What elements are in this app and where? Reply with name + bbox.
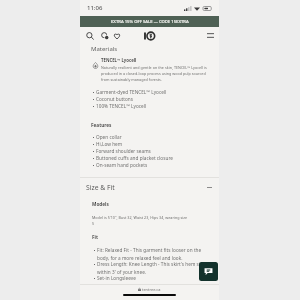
button[interactable]: EXTRA 15% OFF SALE — CODE 15EXTRA	[80, 16, 219, 27]
staticText: Materials	[91, 45, 118, 53]
staticText: EXTRA 15% OFF SALE — CODE 15EXTRA	[111, 19, 189, 25]
staticText: On-seam hand pockets	[96, 162, 148, 168]
staticText: Coconut buttons	[96, 96, 134, 102]
staticText: Fit	[92, 234, 99, 240]
staticText: Features	[91, 122, 112, 128]
staticText: Garment-dyed TENCEL™ Lyocell	[96, 89, 167, 95]
button[interactable]: Wishlist	[110, 29, 123, 42]
staticText: Fit: Relaxed Fit - This garment fits loo…	[97, 247, 202, 261]
staticText: 100% TENCEL™ Lyocell	[96, 103, 147, 109]
staticText: Dress Length: Knee Length - This skirt's…	[97, 261, 205, 275]
staticText: tentree.ca	[142, 287, 161, 292]
button[interactable]: tentree home	[142, 29, 157, 42]
button[interactable]: Account	[98, 29, 111, 42]
staticText: Forward shoulder seams	[96, 148, 151, 154]
button[interactable]: Chat with us	[199, 262, 218, 281]
button[interactable]: Size & Fit	[86, 183, 212, 192]
staticText: Naturally resilient and gentle on the sk…	[101, 65, 207, 82]
button[interactable]: Menu	[202, 29, 218, 42]
button[interactable]: tentree.ca	[80, 285, 219, 293]
staticText: Hi,Low hem	[96, 141, 123, 147]
staticText: Buttoned cuffs and placket closure	[96, 155, 173, 161]
staticText: Models	[92, 201, 109, 207]
staticText: TENCEL™ Lyocell	[101, 57, 137, 63]
staticText: Set-in Longsleeve	[97, 275, 136, 281]
staticText: Model is 5'10", Bust 32, Waist 23, Hips …	[92, 215, 188, 226]
staticText: 11:06	[87, 4, 103, 12]
staticText: Size & Fit	[86, 183, 115, 192]
button[interactable]: Search	[83, 29, 96, 42]
staticText: Open collar	[96, 134, 122, 140]
